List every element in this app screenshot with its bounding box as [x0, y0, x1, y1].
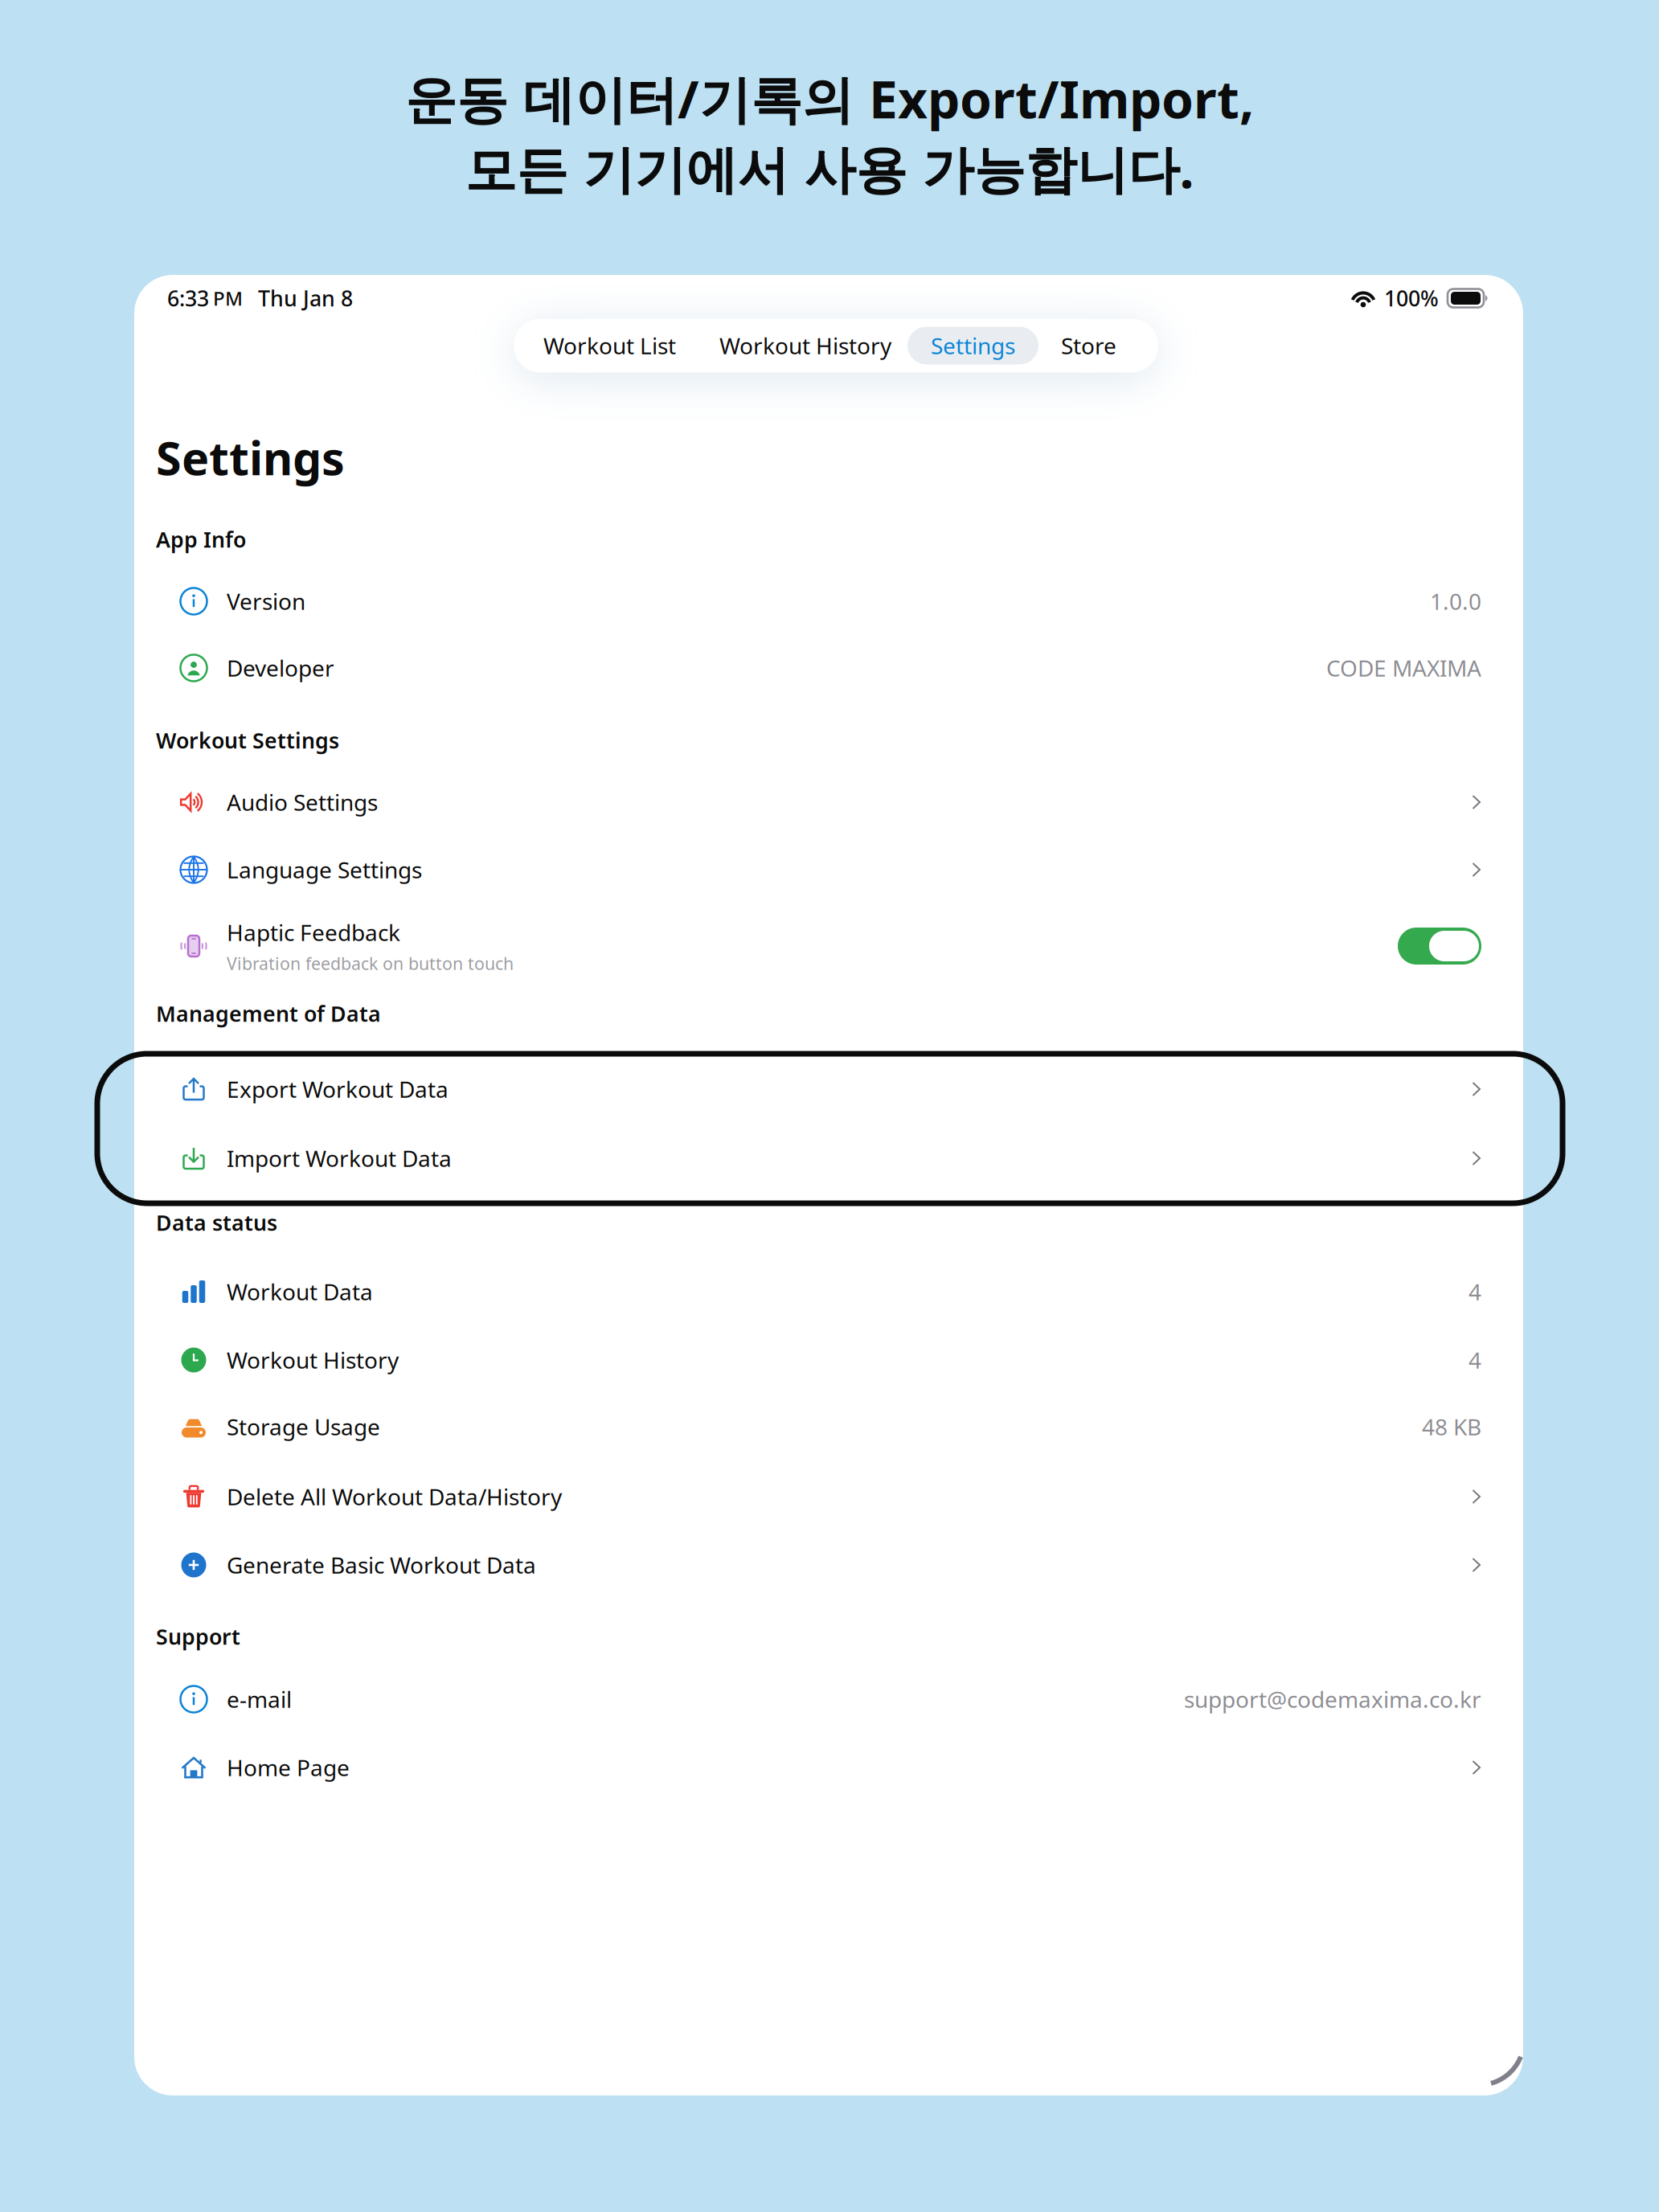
button[interactable]: Home Page: [134, 1734, 1523, 1801]
staticText: Version: [227, 586, 305, 616]
button[interactable]: Language Settings: [134, 836, 1523, 903]
staticText: e-mail: [227, 1684, 292, 1714]
staticText: Developer: [227, 653, 334, 683]
button[interactable]: Workout Data: [134, 1258, 1523, 1325]
staticText: 모든 기기에서 사용 가능합니다.: [465, 134, 1194, 203]
staticText: Settings: [156, 427, 345, 488]
button[interactable]: Export Workout Data: [134, 1055, 1523, 1123]
button[interactable]: Audio Settings: [134, 768, 1523, 836]
staticText: 100%: [1384, 284, 1439, 312]
staticText: Thu Jan 8: [258, 284, 353, 312]
staticText: Workout History: [227, 1345, 399, 1375]
staticText: Haptic Feedback: [227, 917, 400, 947]
staticText: support@codemaxima.co.kr: [1184, 1684, 1481, 1714]
staticText: Management of Data: [156, 999, 381, 1028]
staticText: Storage Usage: [227, 1412, 380, 1442]
button[interactable]: Workout History: [719, 323, 891, 368]
staticText: Data status: [156, 1208, 277, 1237]
staticText: 48 KB: [1422, 1412, 1481, 1442]
button[interactable]: Delete All Workout Data/History: [134, 1463, 1523, 1530]
staticText: Support: [156, 1622, 240, 1651]
staticText: 4: [1469, 1345, 1481, 1375]
staticText: 운동 데이터/기록의 Export/Import,: [405, 64, 1254, 133]
button[interactable]: Haptic Feedback: [134, 912, 1523, 980]
button[interactable]: Storage Usage: [134, 1393, 1523, 1460]
button[interactable]: Store: [1061, 323, 1116, 368]
staticText: PM: [213, 285, 243, 311]
staticText: Workout Settings: [156, 726, 339, 755]
staticText: Import Workout Data: [227, 1143, 452, 1173]
staticText: Delete All Workout Data/History: [227, 1482, 562, 1512]
staticText: Audio Settings: [227, 787, 378, 817]
button[interactable]: Developer: [134, 634, 1523, 702]
staticText: Export Workout Data: [227, 1074, 449, 1104]
staticText: Settings: [931, 331, 1015, 361]
staticText: Store: [1061, 331, 1116, 361]
staticText: 6:33: [167, 284, 209, 312]
staticText: Workout List: [543, 331, 676, 361]
staticText: CODE MAXIMA: [1326, 653, 1481, 683]
button[interactable]: Import Workout Data: [134, 1124, 1523, 1192]
button[interactable]: Workout History: [134, 1326, 1523, 1394]
staticText: Home Page: [227, 1753, 350, 1782]
staticText: Language Settings: [227, 855, 422, 885]
staticText: Workout Data: [227, 1277, 373, 1307]
button[interactable]: e-mail: [134, 1665, 1523, 1733]
staticText: Vibration feedback on button touch: [227, 952, 514, 975]
staticText: 4: [1469, 1277, 1481, 1307]
button[interactable]: Generate Basic Workout Data: [134, 1531, 1523, 1599]
button[interactable]: Haptic Feedback, on: [1398, 928, 1481, 965]
button[interactable]: Settings: [907, 327, 1038, 365]
staticText: Workout History: [719, 331, 891, 361]
staticText: Generate Basic Workout Data: [227, 1550, 536, 1580]
staticText: 1.0.0: [1430, 586, 1481, 616]
button[interactable]: Workout List: [543, 323, 676, 368]
button[interactable]: Version: [134, 567, 1523, 635]
staticText: App Info: [156, 525, 246, 554]
